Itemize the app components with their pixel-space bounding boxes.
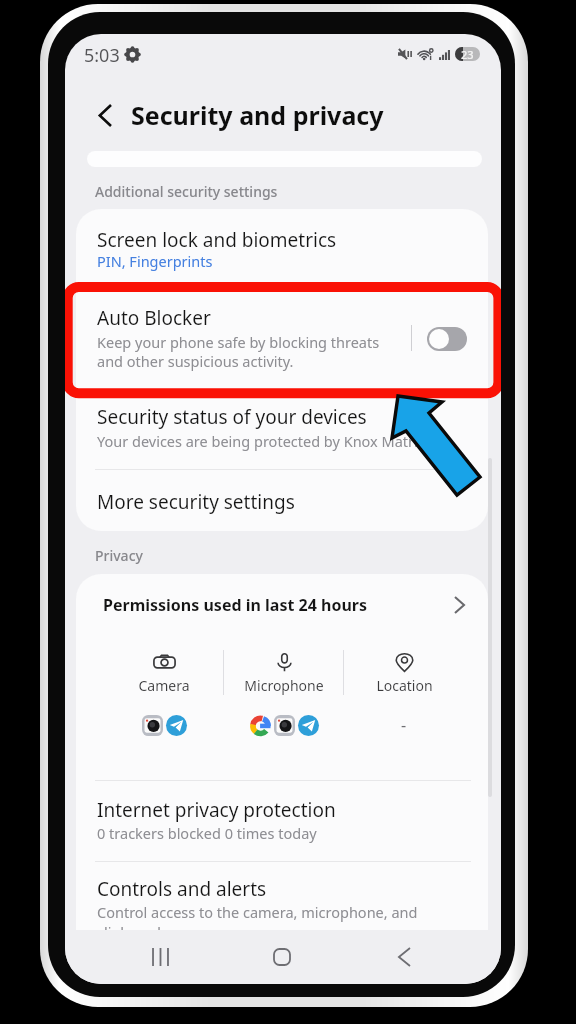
button[interactable]: Auto Blocker toggle (427, 327, 467, 351)
button[interactable]: Back (374, 932, 434, 982)
staticText: Additional security settings (95, 182, 278, 201)
staticText: Privacy (95, 546, 143, 565)
staticText: Permissions used in last 24 hours (103, 594, 368, 616)
staticText: - (401, 714, 407, 736)
staticText: 23 (461, 47, 474, 61)
staticText: More security settings (97, 489, 295, 515)
staticText: Auto Blocker (97, 305, 211, 331)
staticText: Internet privacy protection (97, 797, 336, 823)
staticText: Controls and alerts (97, 876, 267, 902)
staticText: 5:03 (84, 43, 120, 68)
button[interactable]: Screen lock and biometrics (76, 209, 488, 286)
button[interactable]: Recents (130, 932, 190, 982)
staticText: Keep your phone safe by blocking threats… (97, 332, 380, 371)
button[interactable]: More security settings (76, 470, 488, 531)
staticText: Security and privacy (131, 98, 384, 132)
button[interactable]: Back (86, 96, 124, 134)
button[interactable]: Internet privacy protection (76, 783, 488, 861)
staticText: Microphone (244, 676, 324, 695)
staticText: PIN, Fingerprints (97, 251, 213, 271)
button[interactable]: Auto Blocker (76, 286, 488, 393)
staticText: Screen lock and biometrics (97, 227, 337, 253)
button[interactable]: Security status of your devices (76, 393, 488, 469)
staticText: 0 trackers blocked 0 times today (97, 823, 317, 843)
button[interactable]: Controls and alerts (76, 862, 488, 930)
staticText: Your devices are being protected by Knox… (97, 431, 426, 451)
button[interactable]: Permissions used in last 24 hours (76, 574, 488, 630)
staticText: Security status of your devices (97, 404, 367, 430)
staticText: Location (376, 676, 433, 695)
staticText: Camera (138, 676, 190, 695)
button[interactable]: Home (252, 932, 312, 982)
staticText: Control access to the camera, microphone… (97, 902, 418, 930)
